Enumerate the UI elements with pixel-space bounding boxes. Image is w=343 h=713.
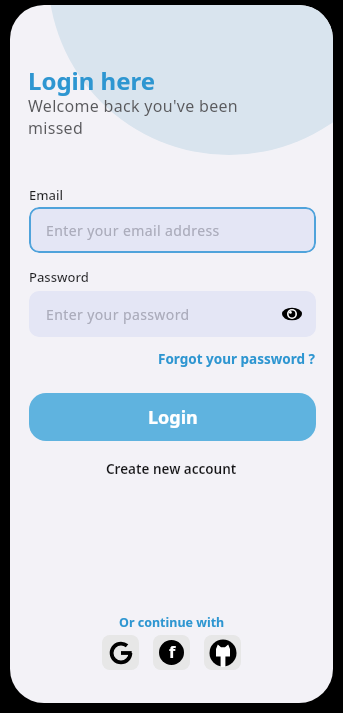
button[interactable] bbox=[281, 303, 303, 325]
staticText: Password bbox=[29, 268, 89, 286]
button[interactable]: Login bbox=[29, 393, 316, 441]
button[interactable]: f bbox=[153, 635, 190, 670]
button[interactable]: Enter your email address bbox=[29, 207, 316, 253]
staticText: Or continue with bbox=[119, 614, 225, 631]
button[interactable] bbox=[204, 635, 241, 670]
staticText: Enter your email address bbox=[46, 221, 220, 240]
staticText: Welcome back you've been missed bbox=[28, 95, 239, 139]
button[interactable]: Enter your password bbox=[29, 291, 316, 337]
button[interactable]: Forgot your password ? bbox=[158, 350, 315, 368]
staticText: Login here bbox=[28, 64, 156, 97]
staticText: f bbox=[169, 641, 176, 663]
staticText: Enter your password bbox=[46, 305, 190, 324]
button[interactable]: Create new account bbox=[106, 460, 237, 478]
staticText: Login bbox=[148, 405, 198, 430]
staticText: Email bbox=[29, 186, 64, 204]
button[interactable] bbox=[102, 635, 139, 670]
